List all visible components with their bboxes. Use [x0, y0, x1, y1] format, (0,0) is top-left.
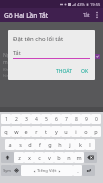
staticText: 1 [5, 116, 8, 123]
staticText: THOÁT [56, 68, 73, 75]
button[interactable]: . [73, 165, 82, 176]
button[interactable]: k [75, 139, 85, 150]
button[interactable]: 4 [31, 114, 41, 124]
staticText: Tiếng Việt [37, 168, 57, 174]
button[interactable]: 9 [81, 114, 91, 124]
button[interactable]: r [31, 126, 41, 137]
staticText: n [67, 154, 71, 161]
button[interactable] [84, 152, 97, 163]
button[interactable]: f [35, 139, 45, 150]
button[interactable]: Checkbox [95, 54, 100, 59]
staticText: p [94, 128, 98, 135]
staticText: g [48, 141, 52, 148]
button[interactable]: l [85, 139, 95, 150]
staticText: a [8, 141, 12, 148]
button[interactable]: 6 [51, 114, 61, 124]
staticText: Đặt tên cho lối tắt [13, 35, 64, 43]
staticText: k [79, 141, 82, 148]
button[interactable] [12, 165, 21, 176]
staticText: OK [81, 68, 89, 75]
staticText: 5 [45, 116, 48, 123]
button[interactable]: g [45, 139, 55, 150]
staticText: m [76, 154, 82, 161]
staticText: i [75, 128, 77, 135]
button[interactable]: b [54, 152, 64, 163]
staticText: Gõ Hai Lần Tắt [4, 11, 49, 20]
button[interactable]: y [51, 126, 61, 137]
staticText: 0 [95, 116, 98, 123]
staticText: 19:55 [90, 2, 101, 7]
staticText: . [77, 167, 79, 174]
staticText: 8 [75, 116, 78, 123]
button[interactable]: 7 [61, 114, 71, 124]
button[interactable]: q [1, 126, 11, 137]
button[interactable]: u [61, 126, 71, 137]
staticText: l [89, 141, 91, 148]
button[interactable]: n [64, 152, 74, 163]
staticText: 4 [35, 116, 38, 123]
staticText: x [28, 154, 31, 161]
staticText: z [18, 154, 21, 161]
staticText: j [69, 141, 71, 148]
staticText: c [38, 154, 41, 161]
button[interactable]: 5 [41, 114, 51, 124]
staticText: b [57, 154, 61, 161]
staticText: o [84, 128, 88, 135]
button[interactable]: a [5, 139, 15, 150]
staticText: y [55, 128, 58, 135]
staticText: Tắt [13, 49, 21, 56]
staticText: 43% [77, 2, 85, 7]
button[interactable]: e [21, 126, 31, 137]
button[interactable] [1, 152, 14, 163]
staticText: d [28, 141, 32, 148]
staticText: w [14, 128, 19, 135]
button[interactable]: OK [78, 66, 92, 77]
staticText: s [19, 141, 22, 148]
button[interactable]: w [11, 126, 21, 137]
staticText: r [35, 128, 38, 135]
button[interactable]: j [65, 139, 75, 150]
button[interactable]: 8 [71, 114, 81, 124]
staticText: Người mù lòng dùng 'facebook messe... [3, 52, 93, 66]
staticText: Khi ứng dụng Messenger chạy trên màn hìn… [3, 67, 87, 79]
staticText: u [64, 128, 68, 135]
button[interactable]: s [15, 139, 25, 150]
button[interactable]: 3 [21, 114, 31, 124]
staticText: e [24, 128, 28, 135]
staticText: 9 [85, 116, 88, 123]
staticText: 3 [25, 116, 28, 123]
button[interactable]: 0 [91, 114, 101, 124]
staticText: Tắt [83, 12, 90, 18]
staticText: h [58, 141, 62, 148]
button[interactable]: Sym [1, 165, 12, 176]
button[interactable]: Tắt [81, 11, 92, 19]
button[interactable]: d [25, 139, 35, 150]
button[interactable]: c [34, 152, 44, 163]
button[interactable] [82, 165, 95, 176]
staticText: 2 [15, 116, 18, 123]
staticText: t [45, 128, 47, 135]
button[interactable]: Tiếng Việt [21, 165, 73, 176]
staticText: q [4, 128, 8, 135]
button[interactable]: h [55, 139, 65, 150]
button[interactable]: 1 [1, 114, 11, 124]
button[interactable]: p [91, 126, 101, 137]
button[interactable]: o [81, 126, 91, 137]
staticText: f [39, 141, 41, 148]
staticText: 6 [55, 116, 58, 123]
button[interactable]: m [74, 152, 84, 163]
button[interactable]: 2 [11, 114, 21, 124]
button[interactable]: t [41, 126, 51, 137]
staticText: v [48, 154, 51, 161]
staticText: 7 [65, 116, 68, 123]
button[interactable]: v [44, 152, 54, 163]
button[interactable]: More options [92, 8, 102, 22]
button[interactable]: THOÁT [53, 66, 76, 77]
button[interactable]: x [24, 152, 34, 163]
staticText: Sym [3, 168, 11, 173]
button[interactable]: i [71, 126, 81, 137]
button[interactable]: z [14, 152, 24, 163]
